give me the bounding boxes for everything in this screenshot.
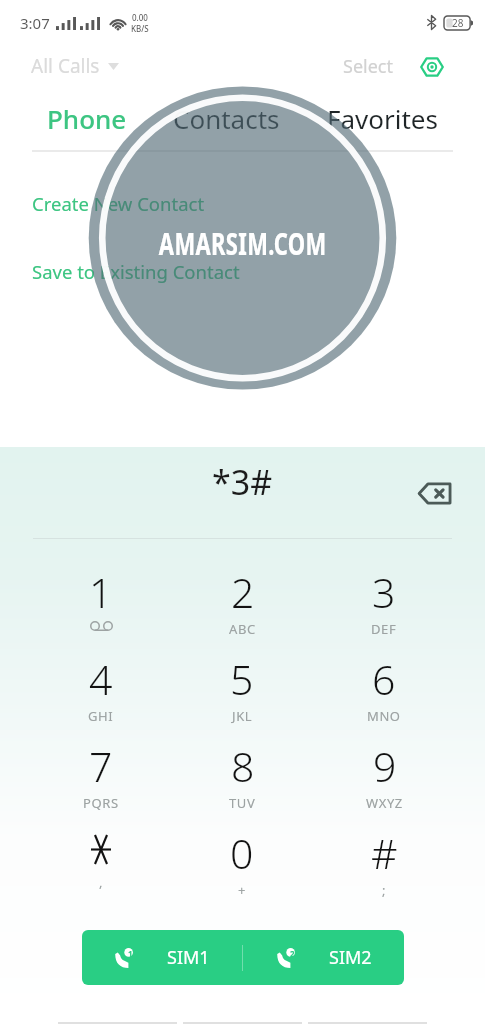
staticText: 6 [372, 651, 396, 707]
button[interactable]: 6 [313, 651, 455, 738]
button[interactable]: # [313, 825, 455, 912]
staticText: 8 [231, 738, 255, 794]
staticText: 1 [128, 948, 133, 959]
staticText: , [99, 873, 104, 891]
button[interactable]: 2 [243, 930, 404, 985]
staticText: ; [382, 881, 387, 899]
staticText: 0.00 [132, 12, 148, 23]
staticText: ABC [229, 620, 256, 638]
button[interactable]: All Calls [31, 53, 119, 79]
staticText: SIM2 [329, 945, 372, 970]
staticText: 0 [230, 825, 254, 881]
button[interactable]: Favorites [327, 101, 438, 136]
staticText: 7 [89, 738, 113, 794]
button[interactable]: Create New Contact [32, 191, 205, 216]
staticText: *3# [212, 459, 273, 505]
staticText: 5 [230, 651, 254, 707]
staticText: 28 [452, 16, 464, 30]
staticText: 2 [231, 564, 255, 620]
staticText: AMARSIM.COM [159, 223, 327, 264]
button[interactable]: 3 [313, 564, 455, 651]
staticText: KB/S [131, 23, 149, 34]
button[interactable]: 0 [171, 825, 313, 912]
staticText: 4 [89, 651, 113, 707]
staticText: MNO [367, 707, 401, 725]
button[interactable]: 5 [171, 651, 313, 738]
button[interactable]: Settings [420, 57, 444, 77]
staticText: Favorites [327, 101, 438, 136]
button[interactable]: 9 [313, 738, 455, 825]
button[interactable]: Backspace [410, 469, 458, 517]
staticText: + [238, 881, 247, 899]
button[interactable]: 8 [171, 738, 313, 825]
button[interactable]: 1 [30, 564, 171, 651]
staticText: # [371, 825, 398, 881]
staticText: JKL [232, 707, 253, 725]
staticText: WXYZ [366, 794, 403, 812]
button[interactable]: 4 [30, 651, 171, 738]
staticText: Contacts [173, 101, 280, 136]
button[interactable]: , [30, 825, 171, 912]
button[interactable]: Select [343, 54, 393, 79]
button[interactable]: Save to Existing Contact [32, 259, 240, 284]
staticText: 1 [89, 564, 113, 620]
staticText: Phone [47, 101, 127, 136]
button[interactable]: 1 [82, 930, 242, 985]
staticText: All Calls [31, 53, 100, 79]
staticText: SIM1 [167, 945, 210, 970]
button[interactable]: 7 [30, 738, 171, 825]
staticText: 9 [373, 738, 397, 794]
staticText: GHI [88, 707, 114, 725]
staticText: 2 [290, 948, 295, 959]
button[interactable]: 2 [171, 564, 313, 651]
staticText: 3 [372, 564, 396, 620]
button[interactable]: Contacts [173, 101, 280, 136]
staticText: DEF [371, 620, 397, 638]
button[interactable]: Phone [47, 101, 127, 136]
staticText: TUV [229, 794, 256, 812]
staticText: PQRS [83, 794, 119, 812]
staticText: 3:07 [20, 13, 50, 33]
